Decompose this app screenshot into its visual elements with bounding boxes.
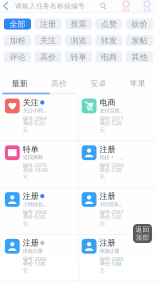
staticText: 注册 [99, 144, 115, 154]
staticText: 电商 [101, 52, 117, 62]
staticText: 单价: 0.20元 [23, 120, 45, 133]
button[interactable]: 关注 [34, 35, 61, 46]
staticText: 单价: 0.50元 [23, 213, 45, 227]
staticText: 返回 [135, 225, 149, 233]
staticText: 请输入任务名称或编号 [15, 2, 85, 10]
staticText: 砍价 [131, 19, 147, 29]
staticText: 注册 [99, 238, 115, 248]
staticText: 电商 [99, 98, 115, 107]
button[interactable]: 电商 [79, 94, 155, 140]
staticText: 注册 [40, 19, 56, 29]
staticText: 编号: 2070 [23, 162, 47, 169]
staticText: 支付宝搜索领红包 [99, 107, 126, 114]
button[interactable]: 点赞 [95, 18, 122, 29]
staticText: 360借条纯注册 [99, 201, 126, 208]
button[interactable]: 发帖 [126, 35, 153, 46]
button[interactable]: 高价 [34, 51, 61, 62]
staticText: 关注 [23, 98, 39, 107]
button[interactable]: 特单 [2, 141, 78, 187]
staticText: 转发 [101, 36, 117, 45]
staticText: 小猪钱包安卓新用... [23, 200, 49, 208]
button[interactable]: 关注 [2, 94, 78, 140]
button[interactable]: 电商 [95, 51, 122, 62]
staticText: 评论 [9, 52, 25, 62]
staticText: 其他 [131, 52, 147, 62]
button[interactable]: 投票 [65, 18, 92, 29]
staticText: 特单 [23, 144, 39, 154]
button[interactable]: 转单 [65, 51, 92, 62]
button[interactable]: 浏览 [65, 35, 92, 46]
button[interactable]: 砍价 [126, 18, 153, 29]
staticText: 关注小熊猫微信公众号 [23, 107, 49, 114]
button[interactable]: 全部 [4, 18, 31, 29]
staticText: 点赞 [101, 19, 117, 29]
staticText: 编号: 2071 [99, 115, 123, 122]
staticText: 收藏 [143, 8, 151, 12]
button[interactable]: 搜索 [95, 0, 111, 12]
staticText: 发帖 [131, 36, 147, 45]
button[interactable]: 加粉 [4, 35, 31, 46]
staticText: 单价: 1.00元 [99, 213, 121, 227]
staticText: 注册 [23, 238, 39, 248]
button[interactable]: 苹果 [118, 77, 157, 89]
staticText: 体验注册 [23, 248, 43, 254]
button[interactable]: 转发 [95, 35, 122, 46]
staticText: 编号: 2065 [99, 255, 123, 262]
button[interactable]: 注册 [2, 235, 78, 281]
staticText: 浏览 [70, 36, 86, 45]
button[interactable]: 其他 [126, 51, 153, 62]
button[interactable]: 返回 [133, 224, 152, 243]
staticText: 注册 [99, 191, 115, 201]
staticText: 送现测额 [23, 154, 43, 161]
staticText: 编号: 2068 [23, 209, 47, 216]
staticText: 投票 [70, 19, 86, 29]
staticText: 顶部 [135, 233, 149, 242]
staticText: 转单 [70, 52, 86, 62]
staticText: 高价 [40, 52, 56, 62]
staticText: 关注 [40, 36, 56, 45]
staticText: 体验注册 [99, 248, 119, 254]
staticText: 高价 [51, 79, 67, 88]
staticText: 最新 [12, 79, 28, 88]
staticText: 加粉 [9, 36, 25, 45]
button[interactable]: 评论 [4, 51, 31, 62]
button[interactable]: 注册 [79, 188, 155, 234]
button[interactable]: 高价 [39, 77, 78, 89]
staticText: 单价: 1.00元 [23, 260, 45, 274]
button[interactable]: 返回 [0, 0, 15, 12]
staticText: 编号: 2066 [23, 255, 47, 262]
button[interactable]: 注册 [79, 235, 155, 281]
staticText: 单价: 2.00元 [99, 166, 121, 180]
staticText: 编号: 2067 [99, 209, 123, 216]
staticText: 全部 [9, 19, 25, 29]
staticText: 编号: 2069 [99, 162, 123, 169]
staticText: 单价: 0.20元 [99, 120, 121, 133]
button[interactable]: 注册 [2, 188, 78, 234]
button[interactable]: 安卓 [78, 77, 118, 89]
staticText: 高价！！快去做注... [99, 154, 126, 161]
staticText: 编号: 2064 [23, 115, 47, 122]
staticText: 注册 [23, 191, 39, 201]
button[interactable]: 最新 [0, 77, 39, 89]
staticText: 苹果 [129, 79, 145, 88]
button[interactable]: 注册 [79, 141, 155, 187]
staticText: 单价: 1.00元 [99, 260, 121, 274]
staticText: 安卓 [90, 79, 106, 88]
button[interactable]: 注册 [34, 18, 61, 29]
staticText: 客服 [122, 8, 130, 12]
staticText: 单价: 18.00元 [23, 166, 48, 180]
